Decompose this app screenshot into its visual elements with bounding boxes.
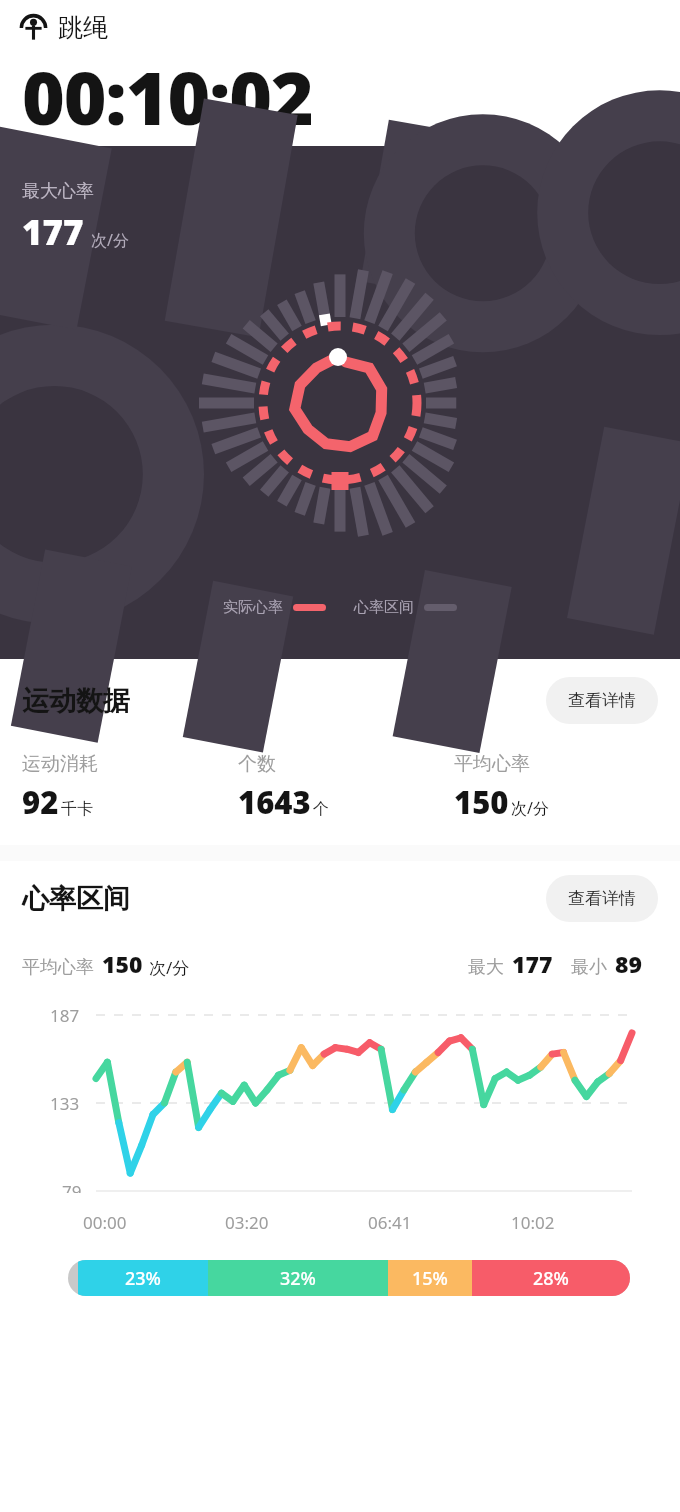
staticText: 187	[50, 1004, 80, 1027]
staticText: 89	[615, 948, 642, 979]
other: Jump rope	[20, 14, 47, 41]
staticText: 次/分	[149, 956, 190, 979]
staticText: 运动消耗	[22, 752, 98, 776]
staticText: 79	[62, 1180, 82, 1193]
staticText: 32%	[280, 1266, 316, 1291]
staticText: 运动数据	[22, 684, 130, 718]
staticText: 23%	[125, 1266, 161, 1291]
staticText: 个数	[238, 752, 276, 776]
staticText: 次/分	[91, 229, 129, 251]
button[interactable]: 查看详情	[546, 677, 658, 724]
staticText: 150	[454, 781, 509, 823]
staticText: 15%	[412, 1266, 448, 1291]
staticText: 个	[313, 799, 329, 819]
staticText: 最大心率	[22, 180, 94, 203]
staticText: 28%	[533, 1266, 569, 1291]
staticText: 查看详情	[568, 888, 636, 909]
staticText: 最小	[571, 956, 607, 979]
staticText: 150	[102, 948, 143, 979]
staticText: 06:41	[368, 1211, 412, 1234]
staticText: 177	[512, 948, 553, 979]
staticText: 92	[22, 781, 59, 823]
staticText: 177	[22, 208, 84, 256]
staticText: 心率区间	[354, 598, 414, 617]
staticText: 00:10:02	[22, 47, 313, 146]
staticText: 跳绳	[58, 12, 108, 43]
staticText: 03:20	[225, 1211, 269, 1234]
staticText: 最大	[468, 956, 504, 979]
staticText: 10:02	[511, 1211, 555, 1234]
staticText: 1643	[238, 781, 311, 823]
staticText: 查看详情	[568, 690, 636, 711]
staticText: 心率区间	[22, 882, 130, 916]
staticText: 次/分	[511, 797, 549, 819]
staticText: 平均心率	[454, 752, 530, 776]
staticText: 平均心率	[22, 956, 94, 979]
staticText: 实际心率	[223, 598, 283, 617]
staticText: 千卡	[61, 799, 93, 819]
button[interactable]: 查看详情	[546, 875, 658, 922]
staticText: 00:00	[83, 1211, 127, 1234]
staticText: 133	[50, 1092, 80, 1115]
